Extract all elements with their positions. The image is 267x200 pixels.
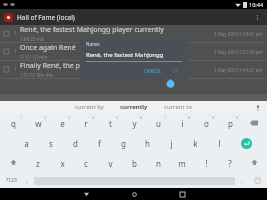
- staticText: g: [121, 138, 126, 149]
- button[interactable]: e: [50, 113, 74, 133]
- button[interactable]: d: [63, 133, 87, 153]
- button[interactable]: f: [87, 133, 111, 153]
- staticText: j: [170, 138, 173, 149]
- button[interactable]: i: [170, 113, 194, 133]
- staticText: current by: [75, 103, 104, 111]
- button[interactable]: a: [14, 133, 39, 153]
- staticText: 1: [14, 48, 17, 55]
- button[interactable]: w: [26, 113, 50, 133]
- staticText: c: [84, 158, 88, 169]
- button[interactable]: q: [1, 113, 26, 133]
- staticText: current to: [164, 103, 193, 111]
- button[interactable]: Select: [0, 61, 267, 79]
- staticText: 1: [14, 66, 17, 73]
- button[interactable]: c: [74, 153, 98, 173]
- staticText: v: [108, 158, 113, 169]
- button[interactable]: h: [135, 133, 159, 153]
- staticText: René, the fastest Mahjongg player curren…: [86, 51, 182, 59]
- button[interactable]: Backspace: [242, 113, 266, 133]
- button[interactable]: Emoji: [249, 173, 265, 188]
- staticText: o: [204, 118, 209, 129]
- button[interactable]: Recents: [169, 188, 195, 200]
- staticText: b: [132, 158, 137, 169]
- button[interactable]: .: [235, 173, 249, 188]
- staticText: r: [84, 118, 88, 129]
- staticText: currently: [120, 103, 148, 111]
- button[interactable]: u: [146, 113, 170, 133]
- staticText: l: [218, 138, 221, 149]
- button[interactable]: r: [74, 113, 98, 133]
- button[interactable]: ?123: [2, 173, 20, 188]
- staticText: t: [109, 118, 112, 129]
- button[interactable]: Select: [0, 43, 267, 61]
- staticText: 9: [212, 115, 215, 120]
- staticText: 0: [236, 115, 239, 120]
- button[interactable]: Back: [73, 188, 99, 200]
- staticText: Once again René: [20, 43, 76, 53]
- button[interactable]: n: [146, 153, 170, 173]
- button[interactable]: v: [98, 153, 122, 173]
- button[interactable]: Home: [121, 188, 147, 200]
- button[interactable]: OK: [169, 67, 182, 75]
- staticText: ,: [26, 177, 28, 185]
- button[interactable]: g: [111, 133, 135, 153]
- other: Select: [4, 31, 9, 36]
- staticText: i: [181, 118, 184, 129]
- staticText: Name:: [86, 41, 100, 47]
- button[interactable]: CANCEL: [141, 67, 165, 75]
- staticText: René, the fastest Mahjongg player curren…: [20, 25, 164, 35]
- staticText: 6: [140, 115, 143, 120]
- staticText: q: [11, 118, 16, 129]
- button[interactable]: b: [122, 153, 146, 173]
- button[interactable]: current by: [73, 102, 106, 112]
- staticText: w: [35, 118, 42, 129]
- button[interactable]: Voice input: [253, 103, 262, 112]
- staticText: ?: [228, 158, 232, 169]
- staticText: 10:44: [249, 1, 264, 8]
- button[interactable]: l: [207, 133, 231, 153]
- button[interactable]: !: [194, 153, 218, 173]
- button[interactable]: x: [50, 153, 74, 173]
- button[interactable]: m: [170, 153, 194, 173]
- staticText: y: [132, 118, 137, 129]
- button[interactable]: s: [39, 133, 63, 153]
- staticText: s: [49, 138, 53, 149]
- staticText: 3 May 2015 5:34:41 pm: [214, 31, 263, 37]
- button[interactable]: Shift: [1, 153, 26, 172]
- button[interactable]: current to: [162, 102, 195, 112]
- staticText: d: [73, 138, 78, 149]
- staticText: 3 May 2015 5:44:21 pm: [214, 67, 263, 73]
- button[interactable]: k: [183, 133, 207, 153]
- staticText: 2: [44, 115, 47, 120]
- staticText: m: [178, 158, 186, 169]
- button[interactable]: y: [122, 113, 146, 133]
- staticText: OK: [172, 68, 179, 74]
- button[interactable]: Enter: [233, 133, 259, 153]
- staticText: z: [36, 158, 40, 169]
- button[interactable]: o: [194, 113, 218, 133]
- button[interactable]: p: [218, 113, 242, 133]
- button[interactable]: z: [26, 153, 50, 173]
- staticText: n: [156, 158, 161, 169]
- button[interactable]: t: [98, 113, 122, 133]
- staticText: 8: [188, 115, 191, 120]
- staticText: 51:51:13 min: [20, 54, 48, 60]
- staticText: f: [98, 138, 101, 149]
- button[interactable]: More options: [251, 11, 263, 23]
- staticText: Hall of Fame (local): [17, 13, 251, 22]
- staticText: a: [24, 138, 29, 149]
- staticText: 5: [116, 115, 119, 120]
- button[interactable]: ?: [218, 153, 242, 173]
- staticText: !: [205, 158, 208, 169]
- button[interactable]: Shift: [242, 153, 266, 172]
- staticText: 1: [20, 115, 23, 120]
- button[interactable]: currently: [118, 102, 150, 112]
- button[interactable]: j: [159, 133, 183, 153]
- staticText: 3 May 2015 5:21:43 pm: [214, 49, 263, 55]
- staticText: 1: [14, 30, 17, 37]
- button[interactable]: Select: [0, 25, 267, 43]
- staticText: Finally René, the progra: [20, 61, 98, 71]
- staticText: 7: [164, 115, 167, 120]
- button[interactable]: ,: [20, 173, 34, 188]
